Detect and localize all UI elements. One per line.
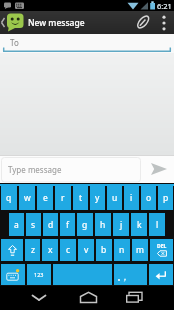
button[interactable]	[0, 11, 26, 34]
staticText: a	[14, 219, 19, 231]
button[interactable]: q	[1, 186, 17, 210]
staticText: f	[66, 219, 69, 231]
staticText: m	[136, 244, 144, 256]
staticText: i	[130, 192, 133, 204]
button[interactable]: y	[90, 186, 105, 210]
staticText: p	[163, 192, 169, 204]
button[interactable]: m	[132, 239, 148, 261]
button[interactable]: d	[43, 213, 58, 236]
button[interactable]	[116, 286, 174, 310]
button[interactable]	[144, 155, 174, 183]
staticText: k	[137, 219, 142, 231]
button[interactable]: w	[19, 186, 35, 210]
staticText: z	[31, 244, 35, 256]
staticText: o	[146, 192, 152, 204]
staticText: q	[6, 192, 12, 204]
button[interactable]: f	[60, 213, 75, 236]
button[interactable]: x	[42, 239, 58, 261]
button[interactable]	[132, 11, 154, 34]
staticText: g	[82, 219, 88, 231]
button[interactable]: t	[73, 186, 88, 210]
button[interactable]: c	[60, 239, 76, 261]
button[interactable]: n	[114, 239, 130, 261]
button[interactable]: i	[124, 186, 139, 210]
staticText: New message	[28, 17, 85, 29]
staticText: h	[100, 219, 106, 231]
staticText: u	[112, 192, 118, 204]
button[interactable]: l	[149, 213, 165, 236]
staticText: DEL	[157, 243, 167, 250]
staticText: d	[48, 219, 54, 231]
button[interactable]: a	[9, 213, 24, 236]
button[interactable]: k	[131, 213, 147, 236]
button[interactable]: h	[95, 213, 111, 236]
button[interactable]	[0, 286, 58, 310]
staticText: j	[120, 219, 123, 231]
button[interactable]: 123	[27, 264, 51, 285]
button[interactable]	[114, 264, 147, 285]
staticText: s	[31, 219, 36, 231]
staticText: 6:21	[157, 1, 172, 11]
staticText: c	[66, 244, 71, 256]
staticText: y	[95, 192, 100, 204]
staticText: e	[43, 192, 48, 204]
button[interactable]: p	[158, 186, 173, 210]
button[interactable]: s	[26, 213, 41, 236]
staticText: b	[101, 244, 107, 256]
button[interactable]	[58, 286, 116, 310]
staticText: t	[79, 192, 83, 204]
button[interactable]	[149, 264, 173, 285]
button[interactable]: g	[77, 213, 93, 236]
button[interactable]: DEL	[150, 239, 173, 261]
button[interactable]: v	[78, 239, 94, 261]
staticText: To	[10, 37, 19, 48]
staticText: 123	[34, 271, 44, 278]
button[interactable]: z	[25, 239, 40, 261]
button[interactable]: u	[107, 186, 122, 210]
button[interactable]	[1, 264, 25, 285]
button[interactable]: b	[96, 239, 112, 261]
staticText: l	[156, 219, 159, 231]
staticText: x	[48, 244, 53, 256]
button[interactable]: e	[37, 186, 53, 210]
staticText: Type message	[8, 164, 62, 175]
button[interactable]: r	[55, 186, 71, 210]
staticText: n	[119, 244, 125, 256]
button[interactable]: o	[141, 186, 156, 210]
staticText: r	[61, 192, 65, 204]
button[interactable]	[1, 239, 23, 261]
staticText: v	[84, 244, 89, 256]
button[interactable]: To	[0, 34, 174, 53]
button[interactable]: j	[113, 213, 129, 236]
staticText: w	[24, 192, 31, 204]
button[interactable]	[154, 11, 174, 34]
